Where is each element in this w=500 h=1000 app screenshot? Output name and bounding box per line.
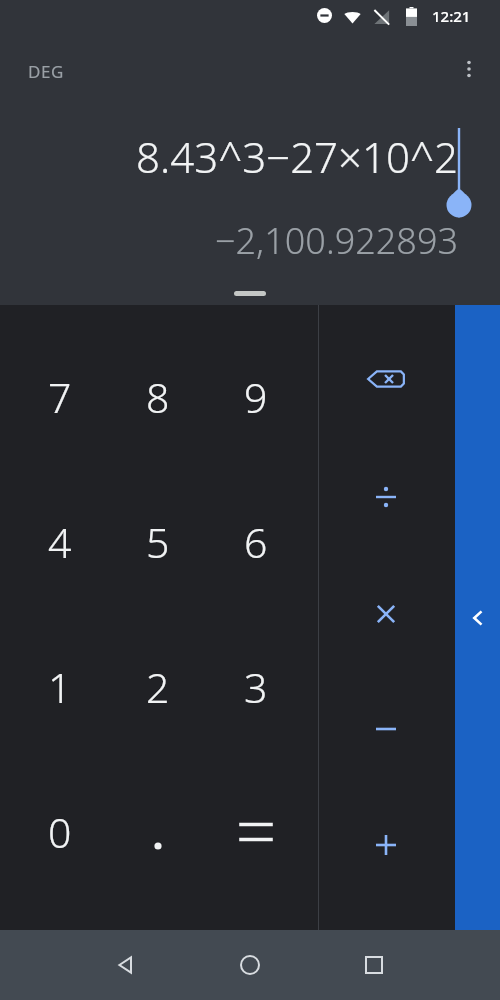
button[interactable]: 2 bbox=[105, 634, 211, 740]
staticText: −2,100.922893 bbox=[214, 216, 458, 265]
button[interactable]: More options bbox=[448, 48, 490, 90]
staticText: 2 bbox=[146, 659, 170, 715]
button[interactable]: Delete bbox=[334, 327, 438, 431]
button[interactable]: 6 bbox=[203, 489, 309, 595]
button[interactable]: 4 bbox=[7, 489, 113, 595]
button[interactable] bbox=[203, 779, 309, 885]
button[interactable]: Back bbox=[100, 940, 150, 990]
staticText: 7 bbox=[48, 369, 72, 425]
staticText: 9 bbox=[244, 369, 268, 425]
staticText: 3 bbox=[244, 659, 268, 715]
button[interactable] bbox=[105, 779, 211, 885]
button[interactable]: 8 bbox=[105, 344, 211, 450]
button[interactable]: 0 bbox=[7, 779, 113, 885]
staticText: 12:21 bbox=[432, 6, 471, 26]
button[interactable]: Add bbox=[334, 793, 438, 897]
button[interactable]: Multiply bbox=[334, 562, 438, 666]
staticText: 6 bbox=[244, 514, 268, 570]
staticText: 5 bbox=[146, 514, 170, 570]
button[interactable]: 5 bbox=[105, 489, 211, 595]
button[interactable]: 7 bbox=[7, 344, 113, 450]
button[interactable]: 9 bbox=[203, 344, 309, 450]
button[interactable]: Divide bbox=[334, 445, 438, 549]
staticText: DEG bbox=[28, 60, 65, 83]
button[interactable]: Recent apps bbox=[349, 940, 399, 990]
button[interactable]: 3 bbox=[203, 634, 309, 740]
button[interactable]: 1 bbox=[7, 634, 113, 740]
staticText: 8.43^3−27×10^2 bbox=[135, 128, 458, 185]
button[interactable]: Home bbox=[225, 940, 275, 990]
button[interactable]: DEG bbox=[26, 56, 67, 87]
button[interactable]: Subtract bbox=[334, 677, 438, 781]
staticText: 4 bbox=[48, 514, 72, 570]
staticText: 8 bbox=[146, 369, 170, 425]
button[interactable]: Open advanced pad bbox=[455, 305, 500, 930]
staticText: 1 bbox=[48, 659, 72, 715]
staticText: 0 bbox=[48, 804, 72, 860]
